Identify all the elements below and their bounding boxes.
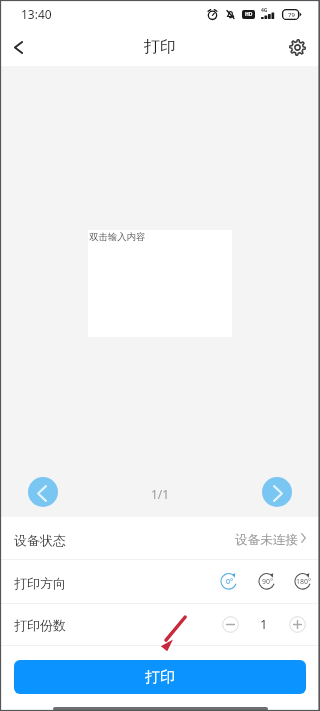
staticText: 13:40 xyxy=(21,6,52,22)
staticText: 打印 xyxy=(145,668,175,687)
button[interactable]: Next page xyxy=(262,477,292,507)
button[interactable]: Increase copies xyxy=(289,616,306,633)
staticText: 1 xyxy=(260,615,268,633)
staticText: 1/1 xyxy=(151,486,170,502)
button[interactable]: 打印份数 xyxy=(0,604,320,645)
staticText: 90° xyxy=(262,577,274,587)
staticText: 设备状态 xyxy=(14,532,66,548)
button[interactable]: Previous page xyxy=(28,477,58,507)
button[interactable]: Decrease copies xyxy=(222,616,239,633)
staticText: HD xyxy=(245,11,253,18)
button[interactable]: 设备状态 xyxy=(0,517,320,559)
button[interactable]: Rotate 90° xyxy=(259,572,276,589)
staticText: 双击输入内容 xyxy=(89,231,146,243)
button[interactable]: Settings xyxy=(280,30,314,64)
staticText: 4G xyxy=(261,7,268,14)
button[interactable]: Rotate 180° xyxy=(295,572,312,589)
staticText: 0° xyxy=(226,577,233,587)
staticText: 打印方向 xyxy=(14,575,66,591)
staticText: 180° xyxy=(296,577,312,587)
staticText: 打印 xyxy=(144,37,176,57)
staticText: 79 xyxy=(288,11,295,19)
staticText: 打印份数 xyxy=(14,617,66,633)
button[interactable]: 打印方向 xyxy=(0,560,320,603)
button[interactable]: 打印 xyxy=(14,660,306,694)
staticText: 设备未连接 xyxy=(235,532,298,548)
button[interactable]: Rotate 0° xyxy=(221,572,238,589)
button[interactable]: Back xyxy=(0,28,36,66)
